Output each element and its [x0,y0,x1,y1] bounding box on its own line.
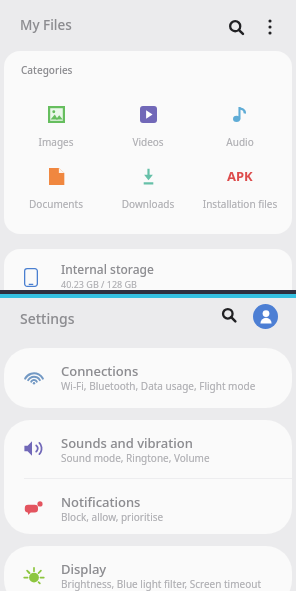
staticText: Sounds and vibration [61,434,193,452]
staticText: Block, allow, prioritise [61,510,164,524]
staticText: Settings [20,309,75,328]
button[interactable]: Images [10,103,102,153]
staticText: Internal storage [61,261,154,277]
staticText: Connections [61,362,139,380]
staticText: 40.23 GB / 128 GB [61,278,137,290]
button[interactable]: Downloads [102,165,194,215]
button[interactable]: Internal storage [4,249,292,309]
button[interactable]: Display [4,546,292,591]
button[interactable]: APK [194,165,286,215]
staticText: Documents [10,197,102,211]
button[interactable]: More options [254,11,286,43]
staticText: Audio [194,135,286,149]
button[interactable]: Notifications [4,479,292,534]
staticText: My Files [20,16,72,34]
button[interactable]: Videos [102,103,194,153]
staticText: Videos [102,135,194,149]
staticText: Sound mode, Ringtone, Volume [61,451,210,465]
button[interactable]: Documents [10,165,102,215]
staticText: Categories [21,63,73,77]
button[interactable]: Sounds and vibration [4,420,292,477]
staticText: Brightness, Blue light filter, Screen ti… [61,577,261,591]
button[interactable]: Search settings [213,299,245,331]
staticText: Downloads [102,197,194,211]
staticText: APK [227,167,253,185]
staticText: Wi-Fi, Bluetooth, Data usage, Flight mod… [61,379,256,393]
staticText: Installation files [194,197,286,211]
staticText: Display [61,560,107,578]
button[interactable]: Connections [4,348,292,405]
staticText: Notifications [61,493,141,511]
button[interactable]: Audio [194,103,286,153]
staticText: Images [10,135,102,149]
button[interactable]: Search [221,12,253,44]
button[interactable]: Account [253,304,278,329]
